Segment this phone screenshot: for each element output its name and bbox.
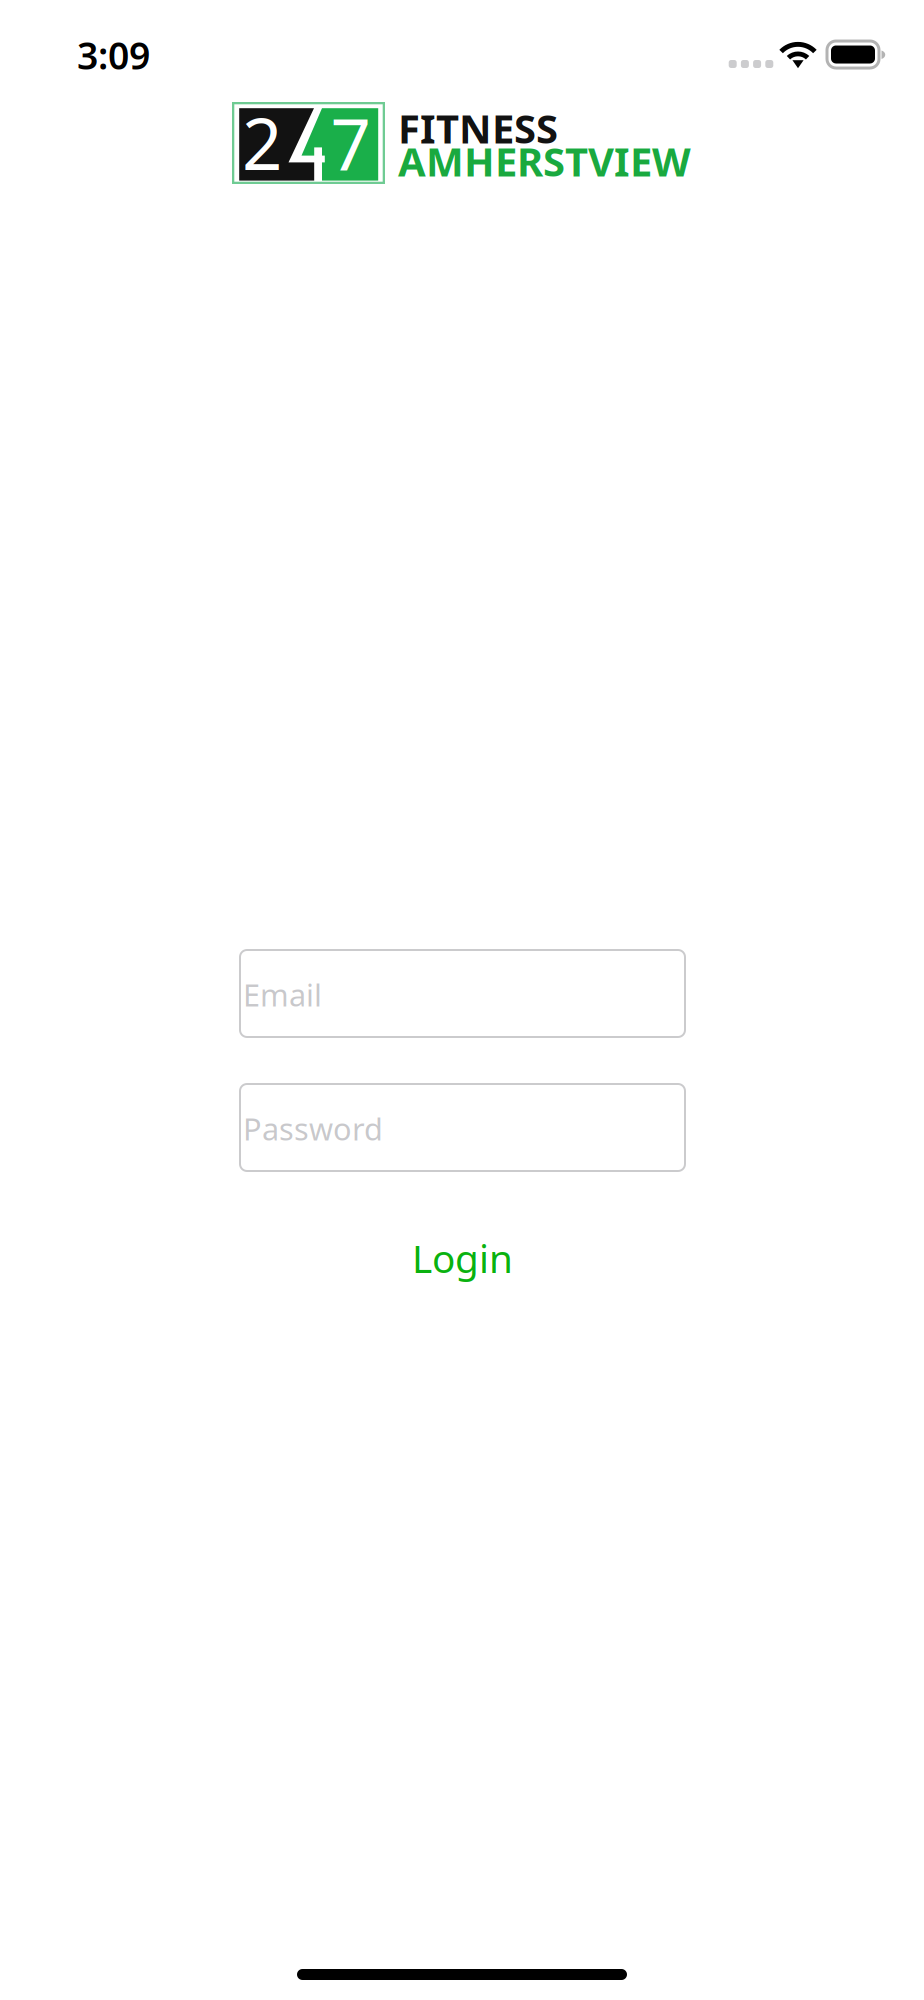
staticText: Email: [243, 974, 322, 1015]
staticText: Password: [243, 1108, 383, 1149]
staticText: AMHERSTVIEW: [398, 134, 691, 187]
staticText: 7: [330, 96, 370, 190]
button[interactable]: Password: [240, 1084, 685, 1171]
staticText: FITNESS: [398, 101, 558, 154]
staticText: Login: [412, 1232, 513, 1284]
button[interactable]: Login: [240, 1232, 685, 1284]
staticText: 3:09: [77, 30, 150, 80]
button[interactable]: Email: [240, 950, 685, 1037]
staticText: 2: [242, 96, 282, 190]
